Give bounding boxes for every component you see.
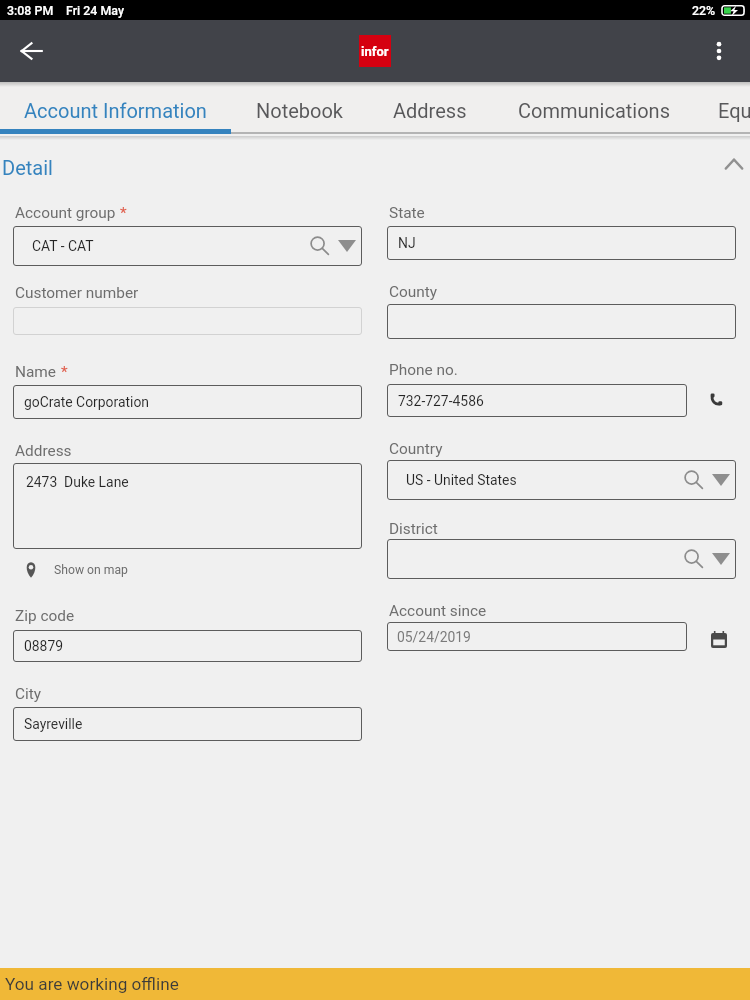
staticText: Name xyxy=(15,363,57,381)
staticText: Sayreville xyxy=(24,716,83,732)
staticText: 3:08 PM xyxy=(7,3,54,18)
staticText: State xyxy=(389,204,425,222)
staticText: US - United States xyxy=(406,472,517,488)
button[interactable]: 732-727-4586 xyxy=(387,384,687,417)
staticText: Address xyxy=(393,99,467,122)
button[interactable]: Account Information xyxy=(0,82,231,134)
staticText: goCrate Corporation xyxy=(24,394,150,410)
staticText: Show on map xyxy=(54,563,128,577)
staticText: Detail xyxy=(2,156,53,179)
button[interactable]: Sayreville xyxy=(13,707,362,741)
staticText: Account since xyxy=(389,602,487,620)
staticText: Zip code xyxy=(15,607,75,625)
staticText: 05/24/2019 xyxy=(397,629,471,645)
staticText: Notebook xyxy=(256,99,344,122)
button[interactable]: NJ xyxy=(387,226,736,260)
staticText: You are working offline xyxy=(5,974,179,994)
button[interactable]: More options xyxy=(691,23,747,79)
staticText: 732-727-4586 xyxy=(398,393,484,409)
staticText: Account Information xyxy=(24,99,207,122)
staticText: * xyxy=(61,363,68,381)
button[interactable]: Equipment xyxy=(697,82,750,134)
button[interactable]: goCrate Corporation xyxy=(13,385,362,419)
staticText: Account group xyxy=(15,204,116,222)
staticText: 22% xyxy=(692,3,716,18)
button[interactable]: Show on map xyxy=(25,562,128,578)
staticText: 2473 Duke Lane xyxy=(26,474,129,490)
button[interactable]: 05/24/2019 xyxy=(387,622,687,651)
staticText: Address xyxy=(15,442,72,460)
button[interactable] xyxy=(387,304,736,339)
staticText: Equipment xyxy=(718,99,750,122)
button[interactable]: Call xyxy=(696,379,736,419)
button[interactable]: Notebook xyxy=(231,82,369,134)
button[interactable]: 2473 Duke Lane xyxy=(13,463,362,549)
staticText: CAT - CAT xyxy=(32,238,94,254)
button[interactable] xyxy=(13,307,362,335)
button[interactable]: Back xyxy=(1,21,61,81)
button[interactable] xyxy=(387,539,736,579)
staticText: Country xyxy=(389,440,443,458)
staticText: District xyxy=(389,520,438,538)
staticText: Phone no. xyxy=(389,361,458,379)
button[interactable]: Collapse section xyxy=(714,145,750,185)
button[interactable]: Address xyxy=(369,82,491,134)
button[interactable]: 08879 xyxy=(13,630,362,662)
button[interactable]: Select date xyxy=(699,619,739,659)
staticText: City xyxy=(15,685,42,703)
staticText: NJ xyxy=(398,235,416,251)
staticText: infor xyxy=(361,44,389,59)
staticText: 08879 xyxy=(24,638,64,654)
button[interactable]: US - United States xyxy=(387,460,736,500)
staticText: Communications xyxy=(518,99,670,122)
staticText: Fri 24 May xyxy=(66,3,124,18)
button[interactable]: Communications xyxy=(491,82,697,134)
staticText: * xyxy=(120,204,127,222)
staticText: County xyxy=(389,283,438,301)
button[interactable]: CAT - CAT xyxy=(13,226,362,266)
staticText: Customer number xyxy=(15,284,139,302)
